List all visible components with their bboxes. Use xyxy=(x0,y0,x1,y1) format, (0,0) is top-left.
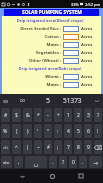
button[interactable]: ; xyxy=(54,140,62,154)
staticText: Other (Wheat) : xyxy=(5,58,61,64)
staticText: Acres xyxy=(81,58,95,64)
button[interactable]: , xyxy=(14,156,23,168)
staticText: - xyxy=(47,112,49,119)
button[interactable]: SOLAR PUMPING SYSTEM xyxy=(4,9,99,16)
staticText: ! xyxy=(97,128,99,135)
staticText: Acres xyxy=(81,42,95,48)
staticText: ? xyxy=(62,159,65,166)
staticText: 5 xyxy=(77,128,80,135)
staticText: . xyxy=(82,159,84,166)
staticText: 33% xyxy=(71,2,79,7)
staticText: + xyxy=(57,112,60,119)
button[interactable]: → xyxy=(89,156,102,168)
button[interactable]: - xyxy=(44,108,52,122)
staticText: Acres xyxy=(81,82,95,88)
staticText: ) xyxy=(27,128,29,135)
button[interactable]: | xyxy=(23,140,32,154)
button[interactable]: + xyxy=(54,108,62,122)
button[interactable]: $ xyxy=(12,108,21,122)
staticText: 6 xyxy=(87,128,90,135)
button[interactable]: ⌫ xyxy=(94,140,102,154)
staticText: ; xyxy=(57,144,59,151)
button[interactable]: ) xyxy=(23,124,32,138)
staticText: Maize : xyxy=(5,82,61,88)
button[interactable]: ! xyxy=(94,124,102,138)
staticText: $ xyxy=(15,112,18,119)
button[interactable]: 5 xyxy=(40,94,56,107)
button[interactable]: 7 xyxy=(64,140,72,154)
button[interactable]: 2 xyxy=(74,108,82,122)
staticText: | xyxy=(26,144,29,151)
button[interactable]: # xyxy=(1,108,10,122)
button[interactable]: 9 xyxy=(84,140,92,154)
staticText: Vegetables : xyxy=(5,50,61,56)
button[interactable]: . xyxy=(49,156,57,168)
button[interactable]: . xyxy=(79,156,87,168)
button[interactable] xyxy=(63,82,79,88)
staticText: Cotton : xyxy=(5,34,61,40)
button[interactable]: 1 xyxy=(64,108,72,122)
staticText: Acres xyxy=(81,26,95,32)
button[interactable]: 51373 xyxy=(59,94,85,107)
button[interactable]: ^ xyxy=(12,140,21,154)
button[interactable]: ? xyxy=(59,156,67,168)
staticText: 0 xyxy=(72,159,75,166)
staticText: ^ xyxy=(15,144,18,151)
staticText: 2 xyxy=(77,112,80,119)
button[interactable]: More suggestions xyxy=(92,96,102,106)
staticText: ' xyxy=(37,128,39,135)
staticText: Direct Seeded Rice : xyxy=(5,26,61,32)
staticText: =\< xyxy=(3,145,9,150)
button[interactable]: ' xyxy=(34,124,42,138)
button[interactable]: 8 xyxy=(74,140,82,154)
button[interactable] xyxy=(63,74,79,80)
button[interactable]: & xyxy=(23,108,32,122)
staticText: Wheat : xyxy=(5,74,61,80)
staticText: , xyxy=(18,159,20,166)
button[interactable]: Back xyxy=(15,169,29,183)
staticText: 1 xyxy=(67,112,70,119)
button[interactable]: ~ xyxy=(34,140,42,154)
button[interactable]: abc xyxy=(1,156,12,168)
button[interactable]: ≠ xyxy=(44,140,52,154)
button[interactable]: Emoji and GIF xyxy=(16,94,29,107)
staticText: ( xyxy=(16,128,18,135)
button[interactable]: : xyxy=(54,124,62,138)
button[interactable] xyxy=(63,34,79,40)
button[interactable]: Keyboard menu xyxy=(0,96,10,106)
button[interactable]: 0 xyxy=(69,156,77,168)
button[interactable]: 6 xyxy=(84,124,92,138)
button[interactable]: =\< xyxy=(1,140,10,154)
staticText: 5 xyxy=(46,96,51,106)
staticText: * xyxy=(37,112,40,119)
button[interactable]: * xyxy=(34,108,42,122)
staticText: Acres xyxy=(81,50,95,56)
button[interactable]: Home xyxy=(45,169,59,183)
button[interactable]: ( xyxy=(12,124,21,138)
staticText: 4 xyxy=(67,128,70,135)
button[interactable]: 4 xyxy=(64,124,72,138)
staticText: ∞ xyxy=(19,96,26,105)
button[interactable]: 5 xyxy=(74,124,82,138)
button[interactable]: ? xyxy=(94,108,102,122)
staticText: : xyxy=(57,128,59,135)
staticText: Drip irrigated area(Rabi crops) xyxy=(5,66,95,72)
staticText: → xyxy=(93,159,99,166)
button[interactable] xyxy=(63,58,79,64)
button[interactable] xyxy=(63,42,79,48)
staticText: abc xyxy=(3,160,10,165)
staticText: SOLAR PUMPING SYSTEM xyxy=(22,9,82,16)
button[interactable]: 3 xyxy=(84,108,92,122)
button[interactable] xyxy=(63,50,79,56)
staticText: 51373 xyxy=(63,96,82,105)
button[interactable]: Recents xyxy=(74,169,88,183)
staticText: Acres xyxy=(81,74,95,80)
button[interactable]: ␣ xyxy=(25,156,47,168)
staticText: 7 xyxy=(67,144,70,151)
staticText: " xyxy=(47,128,50,135)
staticText: ~ xyxy=(37,144,40,151)
button[interactable]: " xyxy=(44,124,52,138)
staticText: 8 xyxy=(77,144,80,151)
button[interactable] xyxy=(63,26,79,32)
button[interactable]: % xyxy=(1,124,10,138)
